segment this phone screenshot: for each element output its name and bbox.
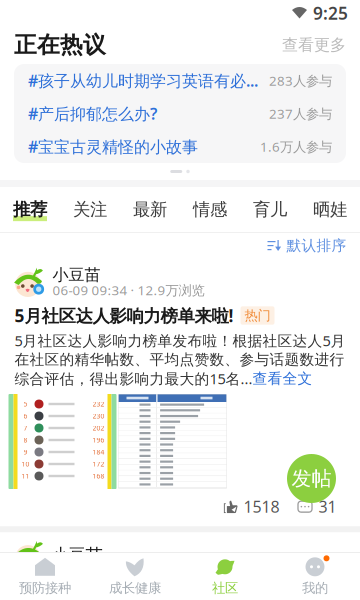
staticText: 168: [92, 472, 104, 480]
button[interactable]: 查看更多: [282, 35, 346, 55]
staticText: 230: [92, 412, 104, 420]
staticText: #宝宝古灵精怪的小故事: [28, 136, 198, 157]
staticText: 6: [23, 412, 27, 420]
staticText: 237人参与: [269, 105, 332, 122]
staticText: 5月社区达人影响力榜单来啦!: [14, 304, 233, 327]
staticText: 7: [23, 424, 27, 432]
staticText: 默认排序: [286, 236, 346, 254]
button[interactable]: #孩子从幼儿时期学习英语有必要...: [14, 64, 346, 97]
staticText: #产后抑郁怎么办?: [28, 103, 157, 124]
staticText: 1518: [243, 496, 279, 517]
staticText: 9:25: [313, 1, 348, 24]
staticText: 预防接种: [19, 580, 71, 596]
button[interactable]: #产后抑郁怎么办?: [14, 97, 346, 130]
button[interactable]: 小豆苗: [0, 532, 360, 592]
staticText: 9: [23, 448, 27, 456]
staticText: 查看全文: [252, 369, 312, 387]
staticText: 综合评估，得出影响力最大的15名...: [14, 369, 252, 388]
staticText: 10: [21, 460, 29, 468]
staticText: 5月社区达人影响力榜单发布啦！根据社区达人5月: [14, 331, 345, 350]
staticText: 查看更多: [282, 35, 346, 55]
button[interactable]: 预防接种: [0, 553, 90, 600]
staticText: #孩子从幼儿时期学习英语有必要...: [28, 70, 261, 91]
staticText: 最新: [133, 199, 167, 220]
button[interactable]: #宝宝古灵精怪的小故事: [14, 130, 346, 163]
staticText: 5: [23, 400, 27, 408]
staticText: 1.6万人参与: [260, 138, 332, 155]
staticText: 8: [23, 436, 27, 444]
button[interactable]: 育儿: [253, 187, 287, 232]
button[interactable]: 发帖: [287, 454, 336, 503]
staticText: 关注: [73, 199, 107, 220]
button[interactable]: 我的: [270, 553, 360, 600]
button[interactable]: 推荐: [13, 187, 47, 232]
button[interactable]: 社区: [180, 553, 270, 600]
staticText: 发帖: [291, 466, 331, 491]
staticText: 06-09 09:34 · 12.9万浏览: [52, 281, 204, 299]
staticText: 正在热议: [14, 31, 106, 59]
button[interactable]: 默认排序: [267, 236, 346, 254]
staticText: 小豆苗: [52, 265, 100, 285]
staticText: 184: [92, 448, 104, 456]
staticText: 我的: [302, 580, 328, 596]
staticText: 热门: [244, 307, 270, 324]
staticText: 晒娃: [313, 199, 347, 220]
button[interactable]: 小豆苗: [0, 258, 360, 526]
button[interactable]: 最新: [133, 187, 167, 232]
staticText: 202: [92, 424, 104, 432]
staticText: 在社区的精华帖数、平均点赞数、参与话题数进行: [14, 350, 344, 368]
button[interactable]: 关注: [73, 187, 107, 232]
staticText: 283人参与: [269, 72, 332, 89]
button[interactable]: 1518: [223, 496, 279, 517]
button[interactable]: 查看全文: [252, 369, 312, 387]
staticText: 情感: [193, 199, 227, 220]
staticText: 小豆苗: [51, 545, 102, 566]
staticText: 社区: [212, 580, 238, 596]
button[interactable]: 晒娃: [313, 187, 347, 232]
staticText: 232: [92, 400, 104, 408]
button[interactable]: 成长健康: [90, 553, 180, 600]
button[interactable]: 情感: [193, 187, 227, 232]
staticText: 推荐: [13, 199, 47, 220]
staticText: 172: [92, 460, 104, 468]
button[interactable]: 31: [279, 496, 336, 517]
staticText: 成长健康: [109, 580, 161, 596]
staticText: 196: [92, 436, 104, 444]
staticText: 11: [21, 472, 29, 480]
staticText: 31: [318, 496, 336, 517]
staticText: 育儿: [253, 199, 287, 220]
